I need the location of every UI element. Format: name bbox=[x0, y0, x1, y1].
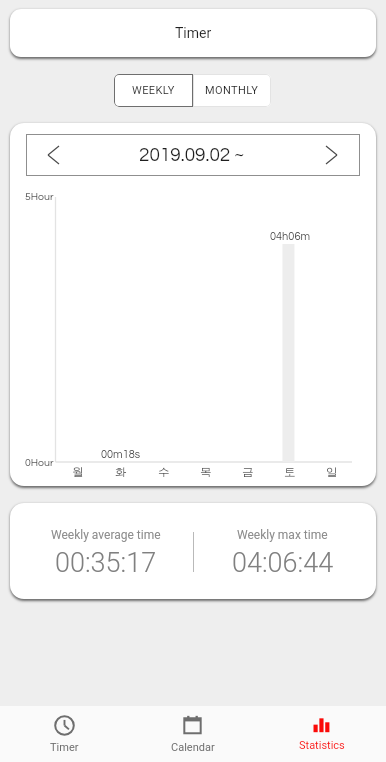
staticText: 목 bbox=[200, 465, 212, 479]
staticText: 04h06m bbox=[270, 231, 310, 242]
staticText: 04:06:44 bbox=[232, 547, 334, 579]
button[interactable]: WEEKLY bbox=[114, 74, 193, 107]
staticText: 00:35:17 bbox=[55, 547, 157, 579]
staticText: Timer bbox=[50, 741, 79, 754]
button[interactable]: MONTHLY bbox=[193, 74, 271, 107]
staticText: 수 bbox=[158, 465, 170, 479]
staticText: 화 bbox=[115, 465, 127, 479]
staticText: 토 bbox=[284, 465, 296, 479]
staticText: MONTHLY bbox=[205, 84, 259, 97]
staticText: 금 bbox=[242, 465, 254, 479]
staticText: Timer bbox=[175, 25, 212, 41]
button[interactable]: Calendar bbox=[128, 706, 257, 762]
staticText: WEEKLY bbox=[132, 84, 175, 97]
staticText: Weekly average time bbox=[51, 528, 161, 542]
button[interactable]: Statistics bbox=[257, 706, 386, 762]
staticText: Calendar bbox=[171, 741, 215, 754]
staticText: 0Hour bbox=[25, 457, 54, 468]
button[interactable]: Timer bbox=[0, 706, 128, 762]
staticText: 5Hour bbox=[25, 191, 54, 202]
staticText: 2019.09.02 ~ bbox=[139, 145, 245, 165]
staticText: 일 bbox=[326, 465, 338, 479]
button[interactable]: Previous week bbox=[26, 134, 80, 176]
staticText: 월 bbox=[72, 465, 84, 479]
button[interactable]: Next week bbox=[303, 134, 360, 176]
staticText: Weekly max time bbox=[237, 528, 328, 542]
staticText: 00m18s bbox=[101, 449, 141, 460]
staticText: Statistics bbox=[299, 739, 345, 752]
button[interactable]: Timer bbox=[10, 9, 376, 57]
